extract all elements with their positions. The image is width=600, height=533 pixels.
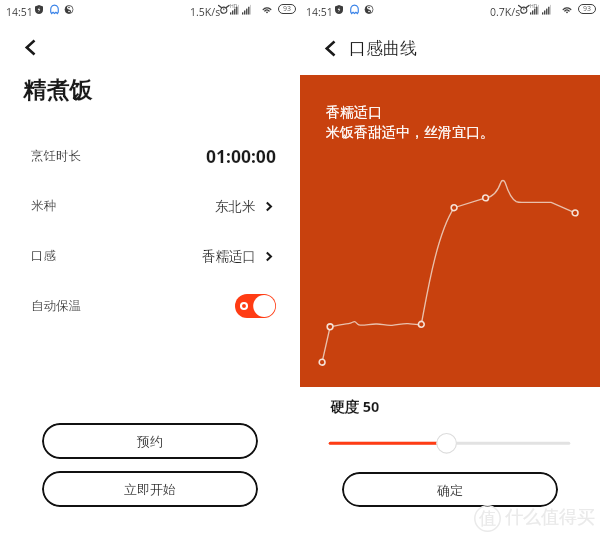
staticText: 米种 bbox=[31, 198, 56, 214]
staticText: 14:51 bbox=[306, 5, 333, 19]
staticText: 米饭香甜适中，丝滑宜口。 bbox=[326, 124, 494, 142]
staticText: 93 bbox=[283, 4, 292, 14]
button[interactable]: 确定 bbox=[342, 472, 558, 507]
staticText: 01:00:00 bbox=[206, 144, 276, 168]
staticText: 香糯适口 bbox=[202, 248, 256, 265]
staticText: 0.7K/s bbox=[490, 5, 521, 19]
staticText: 烹饪时长 bbox=[31, 148, 81, 164]
button[interactable]: 口感 bbox=[0, 231, 300, 281]
staticText: 值 bbox=[479, 508, 496, 529]
button[interactable]: 立即开始 bbox=[42, 471, 258, 507]
staticText: 口感曲线 bbox=[349, 38, 417, 59]
staticText: 香糯适口 bbox=[326, 104, 382, 122]
button[interactable]: 米种 bbox=[0, 181, 300, 231]
staticText: 东北米 bbox=[215, 198, 256, 215]
staticText: 14:51 bbox=[6, 5, 33, 19]
staticText: 口感 bbox=[31, 248, 56, 264]
button[interactable]: 自动保温 bbox=[0, 281, 300, 331]
button[interactable]: 烹饪时长 bbox=[0, 131, 300, 181]
staticText: 预约 bbox=[137, 433, 163, 449]
staticText: 1.5K/s bbox=[190, 5, 221, 19]
button[interactable]: 预约 bbox=[42, 423, 258, 459]
staticText: 确定 bbox=[437, 482, 463, 498]
staticText: 93 bbox=[583, 4, 592, 14]
button[interactable]: Back bbox=[22, 39, 39, 56]
button[interactable] bbox=[300, 430, 600, 455]
staticText: 精煮饭 bbox=[23, 76, 92, 105]
button[interactable]: Auto keep warm toggle bbox=[235, 294, 276, 318]
staticText: 硬度 50 bbox=[330, 396, 380, 416]
button[interactable]: Back bbox=[322, 40, 339, 57]
staticText: 自动保温 bbox=[31, 298, 81, 314]
staticText: HD bbox=[230, 3, 238, 10]
staticText: 立即开始 bbox=[124, 481, 176, 497]
staticText: HD bbox=[530, 3, 538, 10]
staticText: 什么值得买 bbox=[505, 506, 595, 529]
